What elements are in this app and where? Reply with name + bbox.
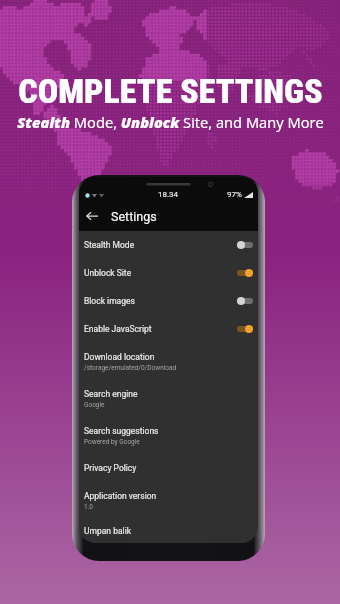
button[interactable]: Application version [79,482,258,519]
staticText: 18.34 [158,190,179,199]
staticText: 97% [227,190,242,199]
button[interactable]: Search engine [79,380,258,417]
staticText: Stealth Mode, Unblock Site, and Many Mor… [17,112,324,132]
button[interactable]: Enable JavaScript [79,315,258,343]
button[interactable]: Umpan balik [79,519,258,543]
button[interactable]: Stealth Mode [79,231,258,259]
staticText: Search suggestions [84,426,159,436]
button[interactable]: Search suggestions [79,417,258,454]
button[interactable]: Back [81,205,103,227]
staticText: COMPLETE SETTINGS [18,71,323,111]
staticText: Google [84,401,105,409]
staticText: Download location [84,352,155,362]
staticText: Stealth Mode [84,240,135,250]
staticText: 1.0 [84,503,94,511]
staticText: Enable JavaScript [84,324,152,334]
staticText: Unblock Site [84,268,132,278]
staticText: Umpan balik [84,526,132,536]
staticText: Block images [84,296,135,306]
button[interactable]: Unblock Site [79,259,258,287]
staticText: /storage/emulated/0/Download [84,364,177,372]
staticText: Privacy Policy [84,463,137,473]
staticText: Settings [111,209,157,224]
staticText: Powered by Google [84,438,140,446]
staticText: Search engine [84,389,138,399]
button[interactable]: Privacy Policy [79,454,258,482]
staticText: Application version [84,491,157,501]
button[interactable]: Block images [79,287,258,315]
button[interactable]: Download location [79,343,258,380]
